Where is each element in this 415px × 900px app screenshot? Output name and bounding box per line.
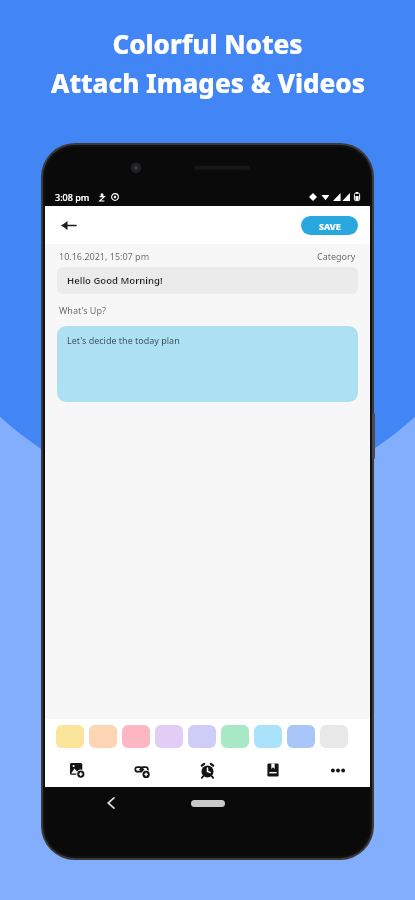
button[interactable]: Color 3 [122, 725, 150, 748]
button[interactable]: Back [53, 210, 83, 240]
button[interactable]: Category [317, 250, 356, 262]
button[interactable]: Hello Good Morning! [57, 267, 358, 294]
button[interactable]: Add image [45, 753, 110, 787]
button[interactable]: Color 9 [320, 725, 348, 748]
staticText: Hello Good Morning! [67, 274, 163, 287]
staticText: Category [317, 250, 356, 262]
button[interactable]: Color 6 [221, 725, 249, 748]
button[interactable]: Home [191, 800, 225, 807]
button[interactable]: Set reminder [175, 753, 240, 787]
staticText: Let's decide the today plan [67, 334, 180, 346]
button[interactable]: Back [97, 790, 123, 816]
staticText: SAVE [319, 220, 341, 232]
staticText: 3:08 pm [55, 191, 90, 203]
button[interactable]: Color 1 [56, 725, 84, 748]
button[interactable]: Let's decide the today plan [57, 326, 358, 402]
button[interactable]: Color 7 [254, 725, 282, 748]
button[interactable]: Bookmark [240, 753, 305, 787]
button[interactable]: Color 4 [155, 725, 183, 748]
button[interactable]: More options [305, 753, 370, 787]
staticText: Colorful Notes [112, 26, 303, 61]
button[interactable]: Color 8 [287, 725, 315, 748]
button[interactable]: Color 2 [89, 725, 117, 748]
staticText: What's Up? [59, 304, 106, 316]
staticText: Attach Images & Videos [51, 65, 365, 100]
button[interactable]: SAVE [301, 216, 358, 235]
staticText: 10.16.2021, 15:07 pm [59, 250, 150, 262]
button[interactable]: Add attachment [110, 753, 175, 787]
button[interactable]: Color 5 [188, 725, 216, 748]
